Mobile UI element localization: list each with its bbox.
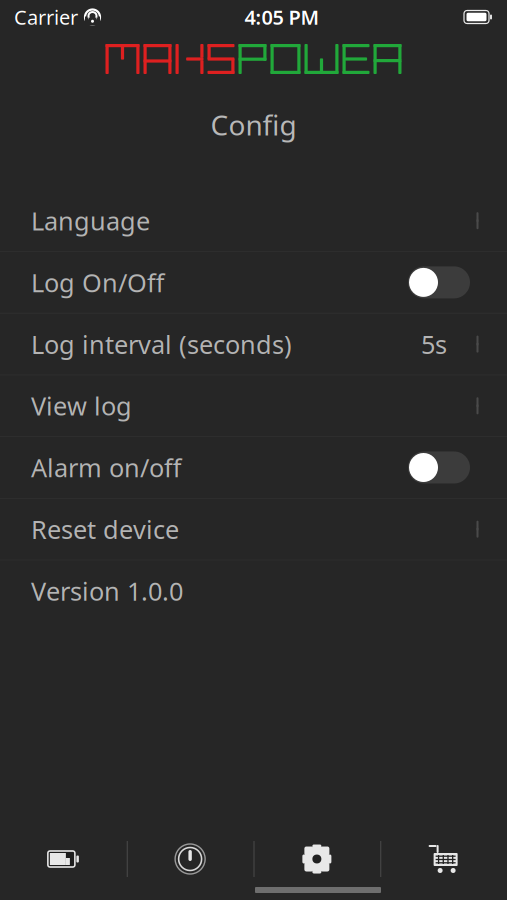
button[interactable]: Language	[0, 190, 507, 252]
button[interactable]: View log	[0, 375, 507, 437]
staticText: Log On/Off	[31, 266, 164, 299]
button[interactable]: Reset device	[0, 499, 507, 560]
button[interactable]: Monitor	[127, 831, 254, 887]
button[interactable]: Alarm on/off	[0, 437, 507, 499]
staticText: Language	[31, 204, 150, 237]
button[interactable]: Battery	[0, 831, 127, 887]
staticText: View log	[31, 389, 132, 423]
button[interactable]: Version 1.0.0	[0, 560, 507, 622]
staticText: Alarm on/off	[31, 451, 181, 484]
staticText: Log interval (seconds)	[31, 327, 292, 361]
button[interactable]: Config	[253, 831, 380, 887]
button[interactable]: Log interval (seconds)	[0, 314, 507, 375]
staticText: 4:05 PM	[244, 4, 319, 30]
button[interactable]: Log On/Off	[0, 252, 507, 314]
button[interactable]: Shop	[380, 831, 507, 887]
staticText: Carrier	[14, 4, 78, 30]
staticText: Reset device	[31, 512, 179, 546]
staticText: Version 1.0.0	[31, 574, 183, 608]
staticText: Config	[210, 106, 296, 143]
staticText: 5s	[421, 327, 447, 361]
